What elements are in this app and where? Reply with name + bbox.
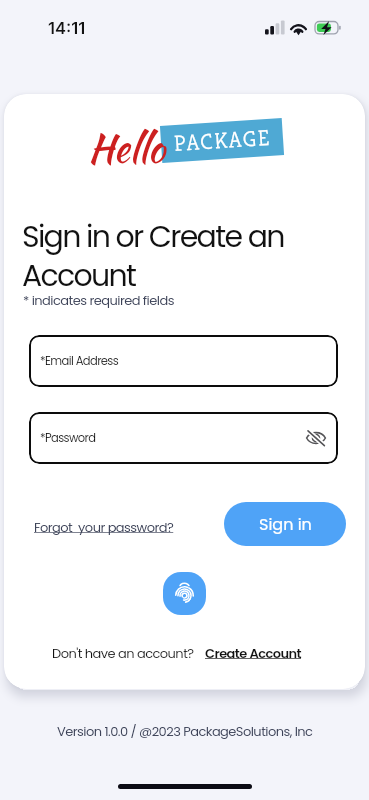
button[interactable]: Forgot your password? xyxy=(34,518,174,536)
button[interactable]: Create Account xyxy=(205,644,302,662)
staticText: 14:11 xyxy=(48,18,86,38)
staticText: *Email Address xyxy=(40,353,119,369)
staticText: *Password xyxy=(40,430,96,446)
staticText: Forgot your password? xyxy=(34,518,174,536)
button[interactable]: *Email Address xyxy=(29,335,338,387)
staticText: Sign in xyxy=(259,513,312,535)
staticText: Version 1.0.0 / @2023 PackageSolutions, … xyxy=(57,722,313,740)
button[interactable]: Sign in xyxy=(224,502,346,546)
staticText: Hello xyxy=(88,120,165,177)
button[interactable]: Sign in with fingerprint xyxy=(163,572,206,615)
other: Show password xyxy=(306,428,326,448)
staticText: * indicates required fields xyxy=(23,291,174,309)
staticText: PACKAGE xyxy=(173,124,272,158)
staticText: Don't have an account? xyxy=(52,644,194,662)
staticText: Sign in or Create an Account xyxy=(22,216,284,296)
button[interactable]: *Password xyxy=(29,412,338,464)
staticText: Create Account xyxy=(205,644,302,662)
